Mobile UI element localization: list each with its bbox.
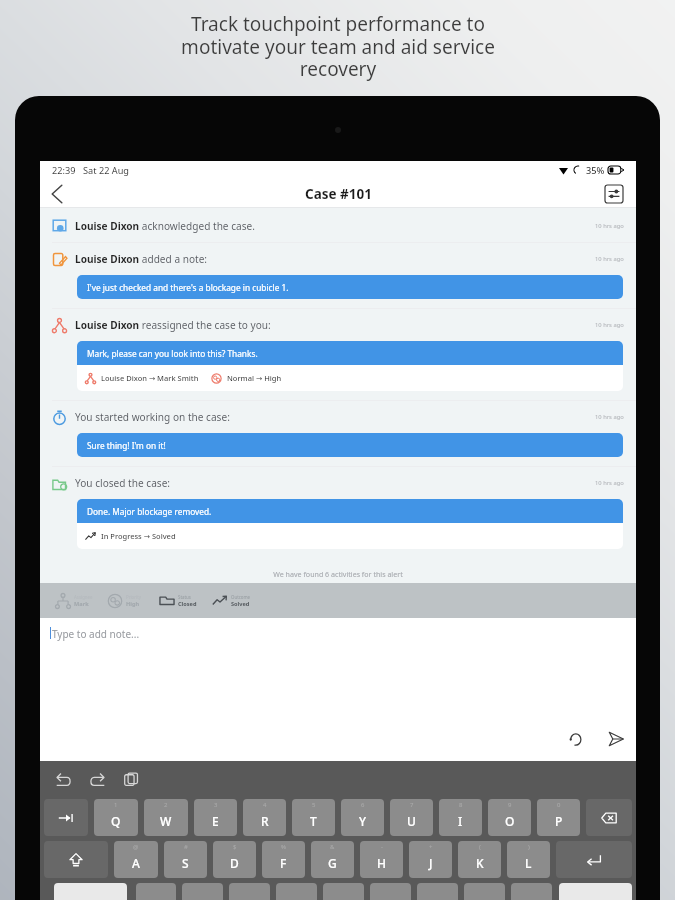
staticText: 6 [361,801,365,809]
staticText: O [505,813,515,829]
staticText: $ [233,843,237,851]
button[interactable]: Done. Major blockage removed. [87,499,613,523]
button[interactable]: Mark, please can you look into this? Tha… [87,341,613,365]
button[interactable]: X [182,883,223,900]
staticText: K [476,855,484,871]
staticText: & [330,843,335,851]
button[interactable]: ) [507,841,550,878]
button[interactable]: V [276,883,317,900]
button[interactable]: # [164,841,207,878]
staticText: T [310,813,317,829]
button[interactable]: Sure thing! I'm on it! [87,433,613,457]
button[interactable]: $ [213,841,256,878]
button[interactable]: 4 [243,799,286,836]
button[interactable]: Louise Dixon reassigned the case to you: [52,309,624,341]
staticText: Status [178,594,191,600]
staticText: Y [359,813,367,829]
staticText: % [281,843,286,851]
button[interactable]: You closed the case: [52,467,624,499]
staticText: I [458,813,463,829]
staticText: L [525,855,532,871]
button[interactable]: Undo [52,768,74,790]
staticText: 4 [263,801,267,809]
staticText: In Progress → Solved [101,531,176,541]
staticText: We have found 6 activities for this aler… [40,569,636,579]
button[interactable]: % [262,841,305,878]
staticText: Q [111,813,121,829]
button[interactable]: Send [605,728,627,750]
button[interactable]: B [323,883,364,900]
button[interactable]: Louise Dixon added a note: [52,243,624,275]
staticText: 10 hrs ago [595,321,624,329]
staticText: You closed the case: [75,476,171,490]
button[interactable]: Clipboard [120,768,142,790]
button[interactable]: ( [458,841,501,878]
staticText: 22:39 [52,164,76,177]
button[interactable]: 3 [194,799,237,836]
button[interactable]: Assignee [55,593,93,609]
staticText: Sat 22 Aug [83,164,130,177]
button[interactable]: tab [44,799,88,836]
staticText: High [126,600,140,608]
button[interactable]: Z [136,883,176,900]
staticText: Sure thing! I'm on it! [87,440,166,451]
button[interactable]: 9 [488,799,531,836]
staticText: Case #101 [305,185,372,203]
button[interactable]: 1 [94,799,138,836]
staticText: Louise Dixon added a note: [75,252,208,266]
button[interactable]: Filter settings [603,183,625,205]
button[interactable]: 0 [537,799,580,836]
button[interactable]: C [229,883,270,900]
button[interactable]: Outcome [212,593,251,609]
staticText: D [230,855,239,871]
button[interactable]: Priority [107,593,142,609]
button[interactable]: Undo [564,728,586,750]
staticText: Louise Dixon → Mark Smith [101,373,199,383]
button[interactable]: + [409,841,452,878]
staticText: Solved [231,600,250,608]
button[interactable]: Louise Dixon acknowledged the case. [52,210,624,242]
button[interactable]: 7 [390,799,433,836]
staticText: 10 hrs ago [595,255,624,263]
staticText: 5 [312,801,316,809]
button[interactable]: - [360,841,403,878]
staticText: Mark [74,600,89,608]
staticText: Closed [178,600,197,608]
staticText: E [212,813,219,829]
button[interactable]: Redo [86,768,108,790]
button[interactable]: enter [556,841,632,878]
button[interactable]: bksp [586,799,632,836]
staticText: Done. Major blockage removed. [87,506,212,517]
button[interactable]: 2 [144,799,188,836]
button[interactable]: You started working on the case: [52,401,624,433]
button[interactable]: , [464,883,505,900]
staticText: U [407,813,416,829]
staticText: H [377,855,386,871]
button[interactable]: N [370,883,411,900]
button[interactable]: & [311,841,354,878]
staticText: @ [133,843,139,851]
button[interactable]: M [417,883,458,900]
staticText: 0 [557,801,561,809]
staticText: 9 [508,801,512,809]
staticText: G [328,855,337,871]
staticText: 35% [586,164,605,177]
button[interactable]: 5 [292,799,335,836]
staticText: Outcome [231,594,251,600]
button[interactable]: . [511,883,552,900]
staticText: Type to add note... [52,627,140,641]
button[interactable]: 6 [341,799,384,836]
staticText: Mark, please can you look into this? Tha… [87,348,258,359]
button[interactable]: Emoji [559,883,632,900]
button[interactable]: 8 [439,799,482,836]
staticText: ( [479,843,481,851]
button[interactable]: shift [44,841,108,878]
staticText: 7 [410,801,414,809]
staticText: ) [528,843,530,851]
button[interactable]: Back [43,180,71,208]
button[interactable]: Status [159,593,197,609]
button[interactable]: Symbols [54,883,127,900]
button[interactable]: @ [114,841,158,878]
button[interactable]: I've just checked and there's a blockage… [87,275,613,299]
